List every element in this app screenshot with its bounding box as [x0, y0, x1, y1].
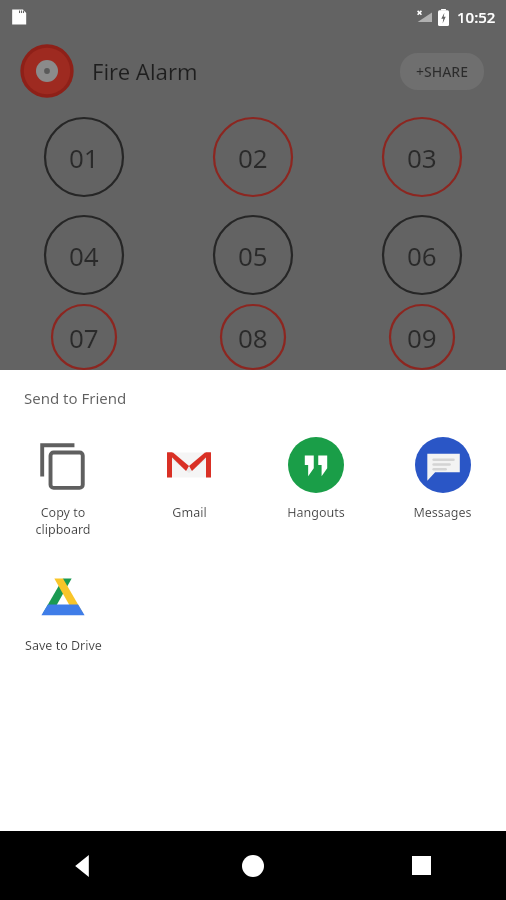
button[interactable]: 06: [337, 215, 506, 295]
button[interactable]: 02: [168, 117, 337, 197]
staticText: Save to Drive: [25, 637, 102, 654]
button[interactable]: Hangouts: [252, 434, 379, 523]
other: Gmail: [164, 440, 214, 490]
staticText: 01: [69, 140, 99, 175]
staticText: 02: [238, 140, 268, 175]
button[interactable]: Messages: [379, 434, 506, 523]
button[interactable]: Home: [168, 831, 337, 900]
button[interactable]: 05: [168, 215, 337, 295]
staticText: +SHARE: [416, 62, 468, 81]
staticText: 05: [238, 238, 268, 273]
other: Hangouts: [288, 437, 344, 493]
button[interactable]: 08: [168, 304, 337, 370]
staticText: 08: [238, 320, 268, 355]
button[interactable]: 04: [0, 215, 168, 295]
staticText: Send to Friend: [24, 388, 127, 408]
button[interactable]: 01: [0, 117, 168, 197]
staticText: Gmail: [172, 504, 207, 521]
staticText: 06: [407, 238, 437, 273]
other: Copy to clipboard: [37, 439, 89, 491]
button[interactable]: +SHARE: [400, 53, 484, 90]
button[interactable]: 09: [337, 304, 506, 370]
staticText: Hangouts: [287, 504, 345, 521]
button[interactable]: Save to Drive: [0, 567, 126, 656]
button[interactable]: Back: [0, 831, 168, 900]
button[interactable]: Copy to clipboard: [0, 434, 126, 539]
button[interactable]: Gmail: [126, 434, 252, 523]
button[interactable]: 03: [337, 117, 506, 197]
staticText: Copy to clipboard: [35, 504, 91, 537]
other: Messages: [415, 437, 471, 493]
staticText: 03: [407, 140, 437, 175]
staticText: 04: [69, 238, 99, 273]
staticText: Messages: [413, 504, 472, 521]
other: Save to Drive: [36, 571, 90, 625]
button[interactable]: 07: [0, 304, 168, 370]
button[interactable]: Recents: [337, 831, 506, 900]
staticText: 10:52: [457, 7, 496, 27]
staticText: Fire Alarm: [92, 56, 198, 86]
staticText: 09: [407, 320, 437, 355]
staticText: 07: [69, 320, 99, 355]
